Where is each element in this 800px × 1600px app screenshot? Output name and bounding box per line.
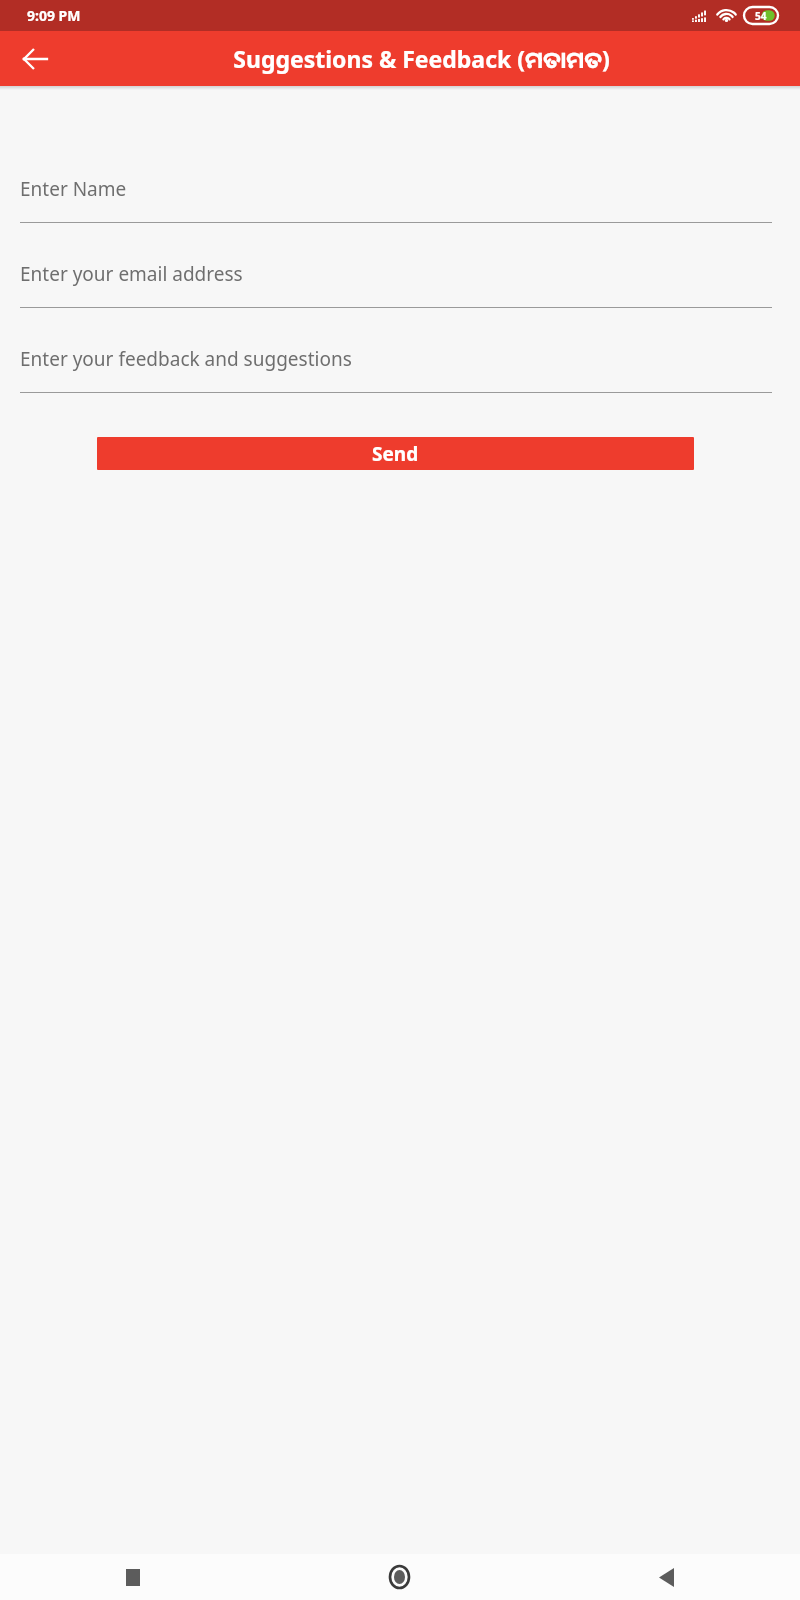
button[interactable]: Enter your feedback and suggestions bbox=[0, 308, 800, 393]
button[interactable]: Enter Name bbox=[0, 142, 800, 223]
staticText: 9:09 PM bbox=[27, 6, 81, 25]
button[interactable]: Enter your email address bbox=[0, 223, 800, 308]
staticText: 54 bbox=[755, 9, 767, 23]
staticText: Enter your feedback and suggestions bbox=[20, 346, 352, 372]
button[interactable]: Send bbox=[97, 437, 694, 470]
staticText: Enter Name bbox=[20, 176, 127, 202]
staticText: Suggestions & Feedback (ମତାମତ) bbox=[233, 43, 610, 74]
button[interactable]: Home bbox=[266, 1554, 533, 1600]
button[interactable]: Back bbox=[11, 35, 58, 82]
staticText: Enter your email address bbox=[20, 261, 243, 287]
button[interactable]: Back bbox=[533, 1554, 800, 1600]
staticText: Send bbox=[372, 441, 419, 467]
button[interactable]: Recent apps bbox=[0, 1554, 266, 1600]
